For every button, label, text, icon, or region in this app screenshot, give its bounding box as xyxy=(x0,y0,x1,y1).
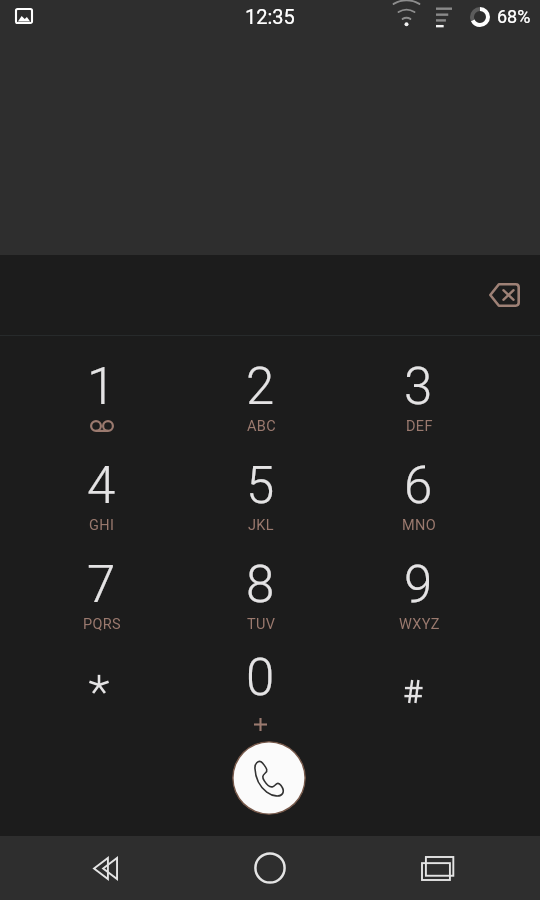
staticText: 2 xyxy=(246,357,275,417)
staticText: 9 xyxy=(404,555,433,615)
button[interactable]: 7 xyxy=(41,555,161,647)
staticText: 5 xyxy=(246,456,275,516)
staticText: 6 xyxy=(404,456,433,516)
staticText: 0 xyxy=(246,648,275,708)
staticText: TUV xyxy=(247,616,276,633)
button[interactable]: Home xyxy=(230,841,310,895)
button[interactable]: Backspace xyxy=(476,267,532,323)
staticText: 68% xyxy=(497,6,531,27)
staticText: GHI xyxy=(89,517,115,534)
button[interactable]: Call xyxy=(232,741,306,815)
button[interactable]: 6 xyxy=(358,456,478,548)
staticText: 1 xyxy=(87,357,116,417)
button[interactable]: 0 xyxy=(200,648,320,740)
button[interactable]: Pound xyxy=(364,648,472,740)
button[interactable]: 2 xyxy=(200,357,320,449)
button[interactable]: Back xyxy=(66,841,146,895)
staticText: 7 xyxy=(87,555,116,615)
staticText: DEF xyxy=(406,418,433,435)
staticText: 12:35 xyxy=(245,5,295,28)
staticText: 4 xyxy=(87,456,116,516)
button[interactable]: 3 xyxy=(358,357,478,449)
staticText: PQRS xyxy=(83,616,122,633)
button[interactable]: Star xyxy=(47,648,155,740)
button[interactable]: 5 xyxy=(200,456,320,548)
button[interactable]: Recent apps xyxy=(398,841,478,895)
staticText: WXYZ xyxy=(399,616,440,633)
button[interactable]: 9 xyxy=(358,555,478,647)
staticText: JKL xyxy=(248,517,274,534)
staticText: MNO xyxy=(402,517,437,534)
staticText: ABC xyxy=(247,418,276,435)
button[interactable]: 1 xyxy=(41,357,161,449)
staticText: 8 xyxy=(246,555,275,615)
staticText: 3 xyxy=(404,357,433,417)
button[interactable]: 8 xyxy=(200,555,320,647)
button[interactable]: 4 xyxy=(41,456,161,548)
